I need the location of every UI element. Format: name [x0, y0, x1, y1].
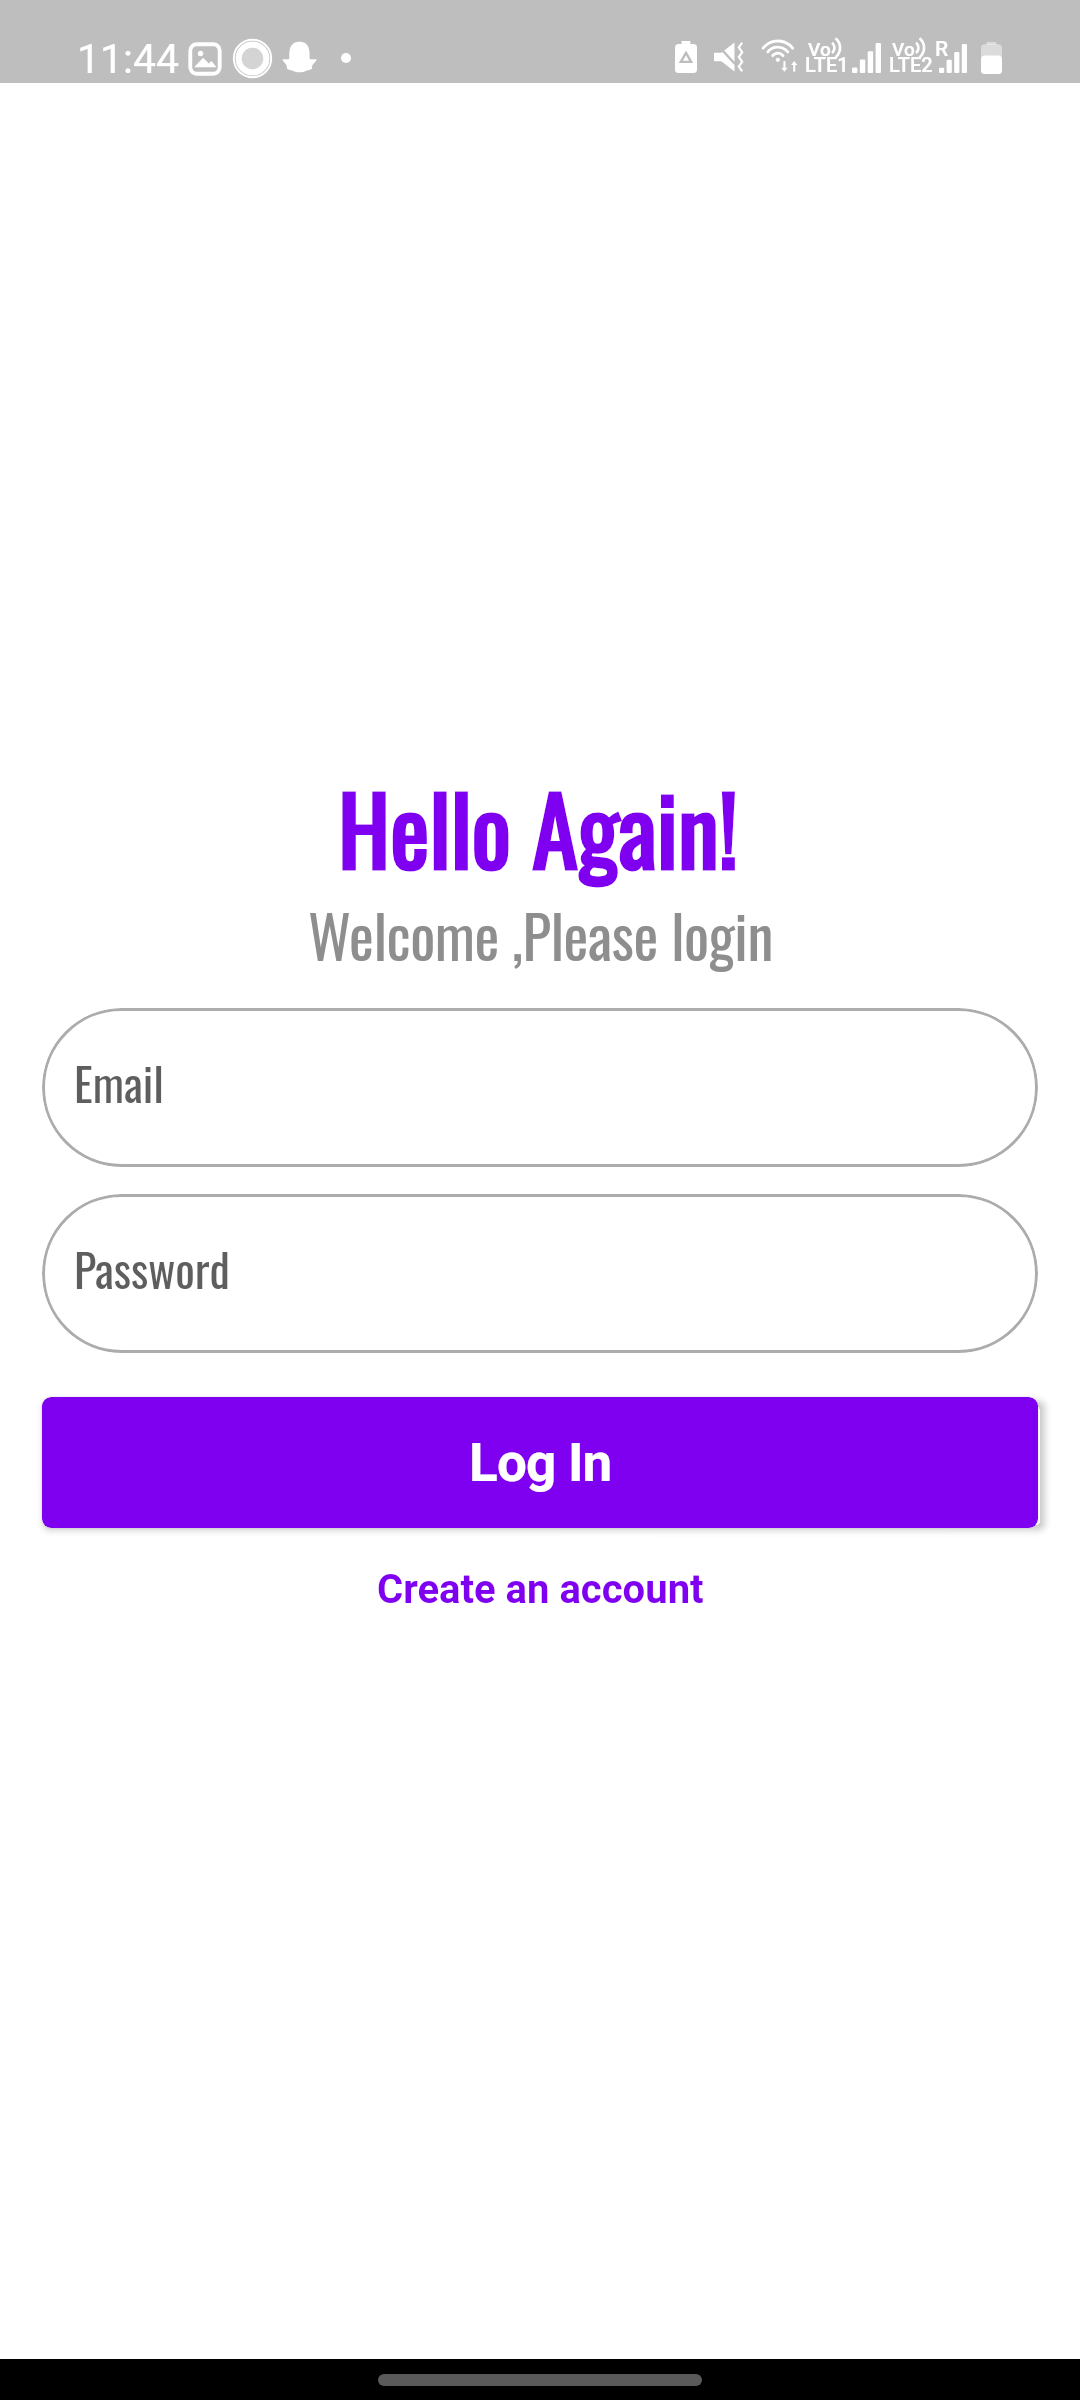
staticText: Password — [74, 1234, 230, 1302]
button[interactable]: Create an account — [351, 1552, 730, 1627]
staticText: Log In — [469, 1432, 612, 1494]
button[interactable]: Email — [42, 1008, 1038, 1167]
button[interactable]: Log In — [42, 1397, 1038, 1528]
staticText: Create an account — [377, 1566, 704, 1613]
button[interactable]: Password — [42, 1194, 1038, 1353]
staticText: Hello Again! — [338, 758, 738, 896]
staticText: LTE1 — [805, 53, 849, 76]
staticText: 11:44 — [77, 35, 180, 83]
staticText: R — [935, 37, 949, 62]
staticText: Vo — [808, 38, 831, 60]
staticText: Vo — [892, 38, 915, 60]
staticText: Welcome ,Please login — [308, 891, 773, 978]
staticText: LTE2 — [889, 53, 933, 76]
staticText: Email — [74, 1048, 164, 1116]
